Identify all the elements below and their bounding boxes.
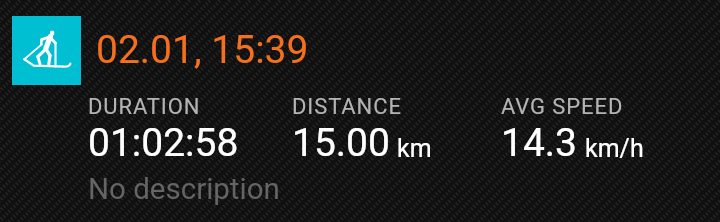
staticText: AVG SPEED [501, 94, 624, 120]
staticText: 15.00 [292, 120, 390, 166]
staticText: km/h [585, 134, 644, 163]
staticText: No description [88, 172, 280, 207]
staticText: 02.01, 15:39 [96, 27, 309, 73]
staticText: DISTANCE [292, 94, 402, 120]
staticText: 14.3 [501, 120, 578, 166]
staticText: DURATION [88, 94, 201, 120]
other: Cross-country skiing [12, 16, 81, 85]
staticText: 01:02:58 [88, 120, 239, 166]
button[interactable]: Cross-country skiing [0, 0, 720, 222]
staticText: km [397, 134, 432, 163]
